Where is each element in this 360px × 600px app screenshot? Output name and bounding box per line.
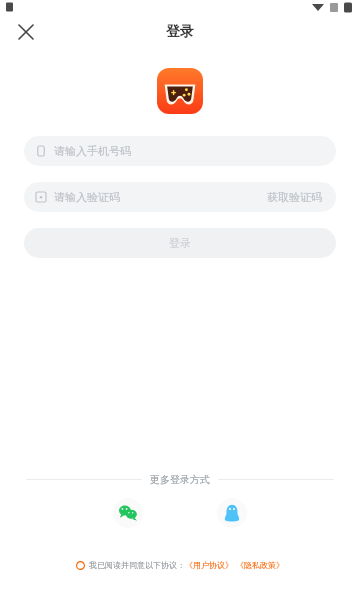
button[interactable]: 请输入手机号码 xyxy=(24,136,336,166)
staticText: 请输入验证码 xyxy=(54,190,120,204)
button[interactable]: 获取验证码 xyxy=(267,190,322,204)
button[interactable]: WeChat login xyxy=(113,498,143,528)
staticText: 登录 xyxy=(166,23,194,41)
button[interactable]: 登录 xyxy=(24,228,336,258)
button[interactable]: 我已阅读并同意以下协议： xyxy=(70,558,290,572)
staticText: 我已阅读并同意以下协议： xyxy=(89,560,185,570)
staticText: 请输入手机号码 xyxy=(54,144,131,158)
staticText: 《隐私政策》 xyxy=(236,560,284,570)
button[interactable]: QQ login xyxy=(217,498,247,528)
staticText: 获取验证码 xyxy=(267,190,322,204)
staticText: 《用户协议》 xyxy=(185,560,233,570)
button[interactable]: Close xyxy=(8,14,44,50)
staticText: 登录 xyxy=(169,236,191,250)
staticText: 更多登录方式 xyxy=(150,473,210,486)
